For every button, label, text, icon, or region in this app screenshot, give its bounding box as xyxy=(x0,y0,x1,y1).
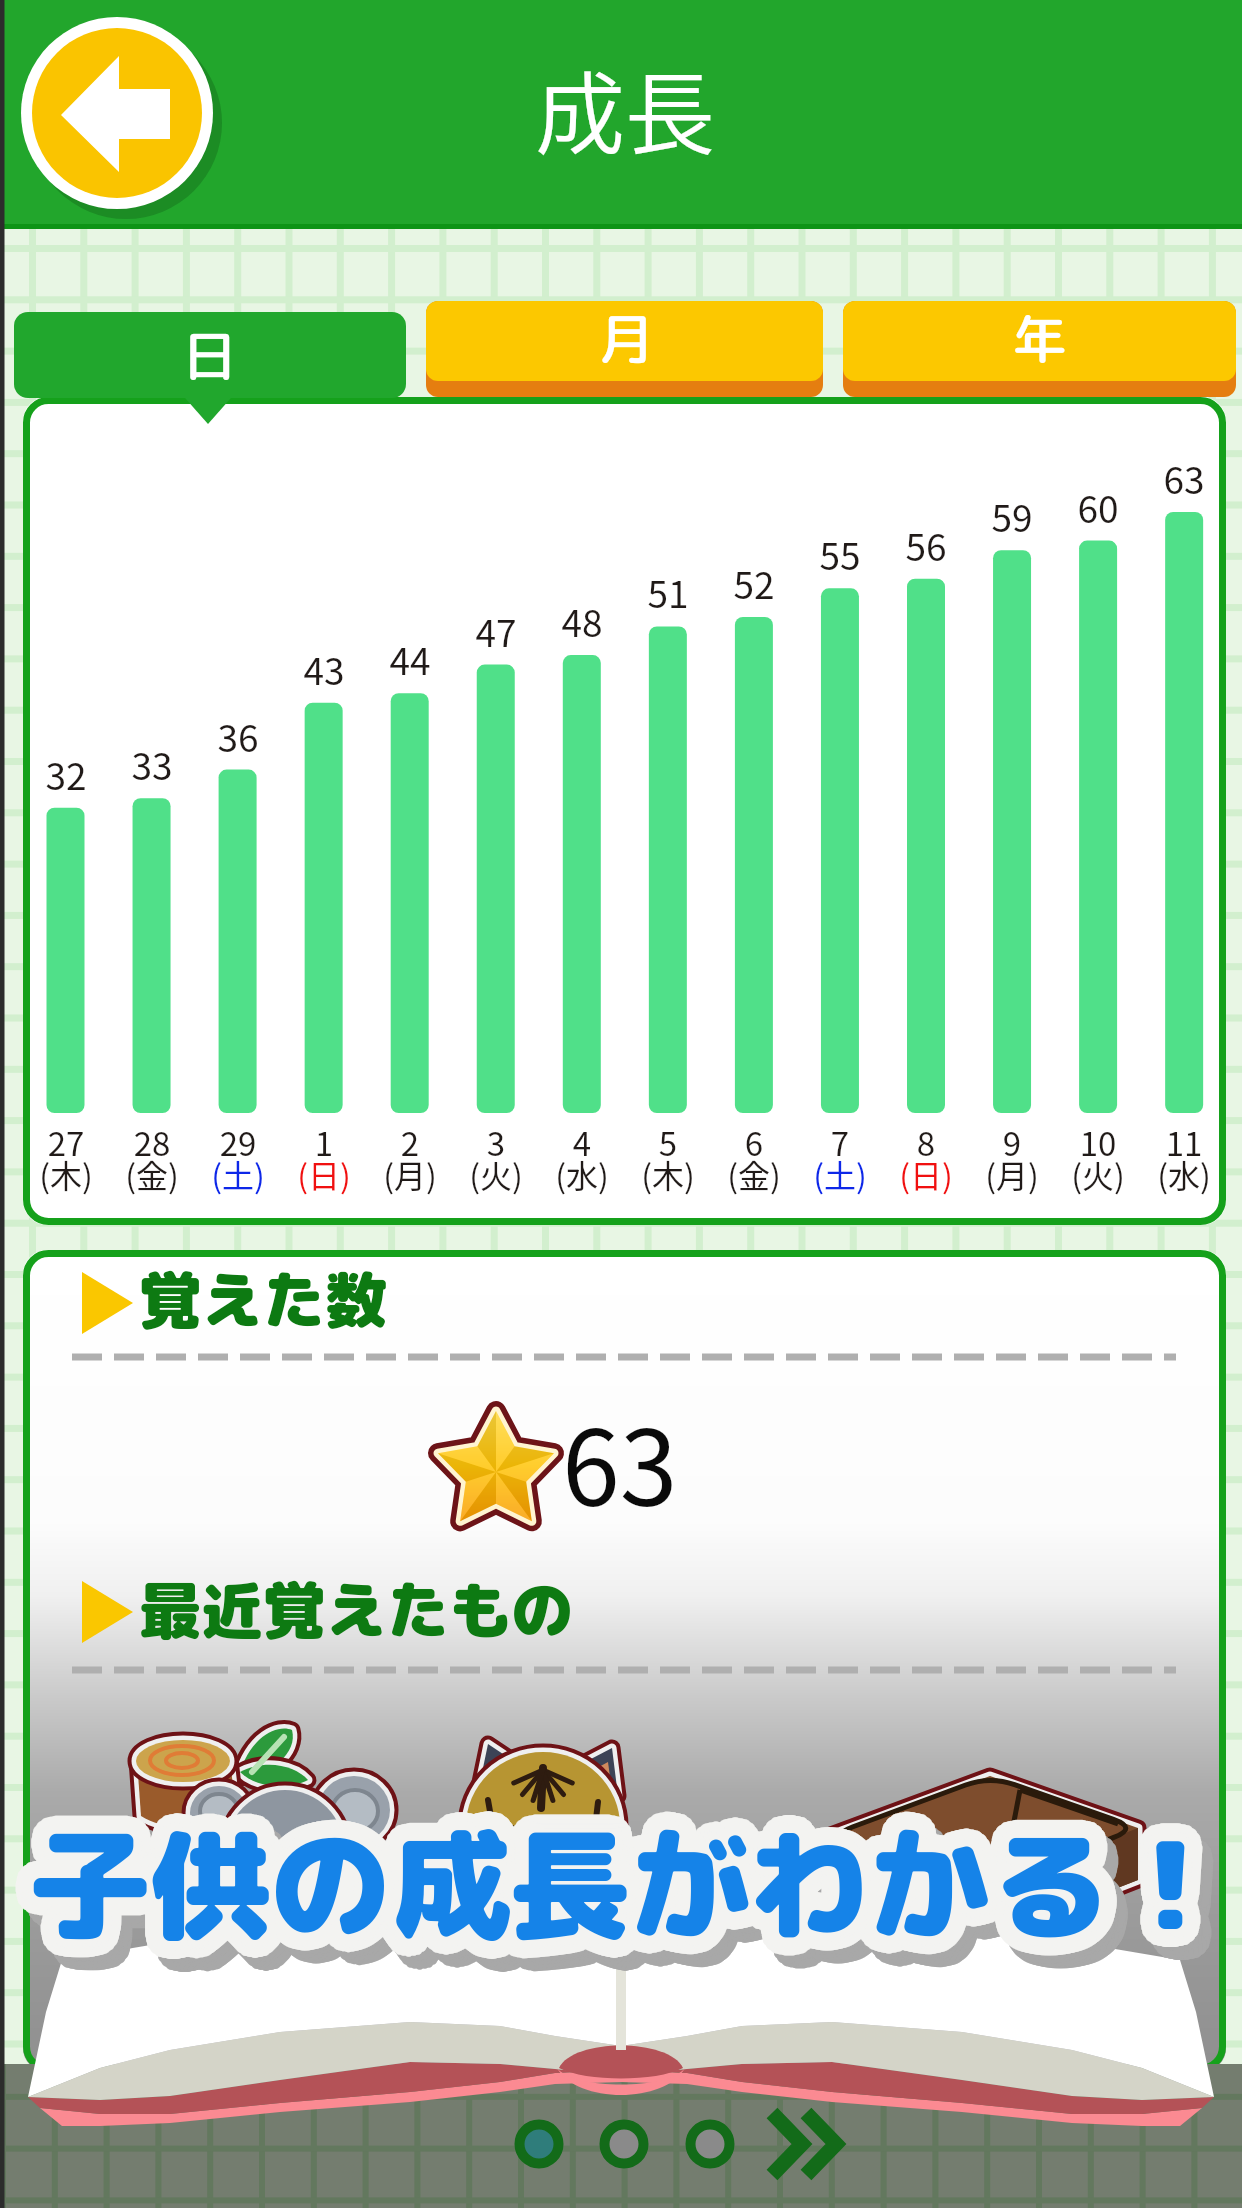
staticText: 子供の成長がわかる！ xyxy=(5,1795,1221,1975)
staticText: 子供の成長がわかる！ xyxy=(39,1805,1242,1985)
staticText: 子供の成長がわかる！ xyxy=(27,1817,1242,1997)
staticText: 子供の成長がわかる！ xyxy=(27,1808,1242,1988)
staticText: 子供の成長がわかる！ xyxy=(33,1795,1242,1975)
staticText: 子供の成長がわかる！ xyxy=(29,1805,1242,1985)
staticText: 子供の成長がわかる！ xyxy=(14,1796,1230,1976)
staticText: 33 xyxy=(0,737,602,796)
staticText: 子供の成長がわかる！ xyxy=(49,1822,1242,2002)
button[interactable] xyxy=(843,301,1236,397)
staticText: 子供の成長がわかる！ xyxy=(38,1805,1242,1985)
staticText: 29 xyxy=(0,1118,688,1171)
staticText: 子供の成長がわかる！ xyxy=(42,1797,1242,1977)
staticText: 月 xyxy=(176,301,1076,387)
staticText: 63 xyxy=(734,451,1242,510)
staticText: (火) xyxy=(46,1151,946,1202)
staticText: 6 xyxy=(304,1118,1204,1171)
staticText: (月) xyxy=(0,1151,860,1202)
staticText: 子供の成長がわかる！ xyxy=(28,1830,1242,2010)
staticText: 子供の成長がわかる！ xyxy=(31,1784,1242,1964)
staticText: 52 xyxy=(304,556,1204,615)
staticText: 子供の成長がわかる！ xyxy=(24,1813,1240,1993)
staticText: 2 xyxy=(0,1118,860,1171)
staticText: 子供の成長がわかる！ xyxy=(35,1813,1242,1993)
staticText: 子供の成長がわかる！ xyxy=(5,1805,1221,1985)
staticText: 子供の成長がわかる！ xyxy=(16,1818,1232,1998)
staticText: 43 xyxy=(0,642,774,701)
staticText: 子供の成長がわかる！ xyxy=(17,1783,1233,1963)
staticText: 子供の成長がわかる！ xyxy=(33,1804,1242,1984)
staticText: 子供の成長がわかる！ xyxy=(27,1783,1242,1963)
staticText: 36 xyxy=(0,709,688,768)
staticText: 55 xyxy=(390,527,1242,586)
staticText: 子供の成長がわかる！ xyxy=(29,1821,1242,2001)
button[interactable] xyxy=(426,301,823,397)
staticText: 10 xyxy=(648,1118,1242,1171)
staticText: 子供の成長がわかる！ xyxy=(38,1809,1242,1989)
staticText: 28 xyxy=(0,1118,602,1171)
staticText: 子供の成長がわかる！ xyxy=(31,1816,1242,1996)
staticText: 1 xyxy=(0,1118,774,1171)
staticText: (水) xyxy=(132,1151,1032,1202)
staticText: 5 xyxy=(218,1118,1118,1171)
staticText: 子供の成長がわかる！ xyxy=(33,1822,1242,2002)
staticText: 子供の成長がわかる！ xyxy=(35,1787,1242,1967)
staticText: 子供の成長がわかる！ xyxy=(24,1797,1240,1977)
staticText: 48 xyxy=(132,594,1032,653)
staticText: 3 xyxy=(46,1118,946,1171)
staticText: 子供の成長がわかる！ xyxy=(28,1796,1242,1976)
staticText: 子供の成長がわかる！ xyxy=(49,1804,1242,1984)
button[interactable]: Back xyxy=(20,14,220,214)
staticText: 子供の成長がわかる！ xyxy=(38,1796,1242,1976)
staticText: 子供の成長がわかる！ xyxy=(50,1808,1242,1988)
button[interactable] xyxy=(14,312,406,397)
staticText: (木) xyxy=(218,1151,1118,1202)
staticText: 子供の成長がわかる！ xyxy=(51,1813,1242,1993)
staticText: 子供の成長がわかる！ xyxy=(25,1809,1241,1989)
staticText: 子供の成長がわかる！ xyxy=(40,1800,1242,1980)
staticText: 63 xyxy=(562,1385,1242,1551)
staticText: 年 xyxy=(590,301,1242,387)
staticText: 子供の成長がわかる！ xyxy=(18,1808,1234,1988)
staticText: 子供の成長がわかる！ xyxy=(13,1784,1229,1964)
staticText: 子供の成長がわかる！ xyxy=(13,1800,1229,1980)
staticText: 子供の成長がわかる！ xyxy=(33,1813,1242,1993)
staticText: 子供の成長がわかる！ xyxy=(25,1818,1241,1998)
staticText: 子供の成長がわかる！ xyxy=(14,1805,1230,1985)
staticText: 子供の成長がわかる！ xyxy=(41,1809,1242,1989)
staticText: 子供の成長がわかる！ xyxy=(22,1809,1238,1989)
staticText: 子供の成長がわかる！ xyxy=(31,1800,1242,1980)
staticText: 子供の成長がわかる！ xyxy=(30,1796,1242,1976)
staticText: 子供の成長がわかる！ xyxy=(38,1791,1242,1971)
staticText: 子供の成長がわかる！ xyxy=(16,1808,1232,1988)
staticText: 子供の成長がわかる！ xyxy=(22,1800,1238,1980)
staticText: 60 xyxy=(648,480,1242,539)
staticText: 子供の成長がわかる！ xyxy=(38,1830,1242,2010)
staticText: 子供の成長がわかる！ xyxy=(15,1813,1231,1993)
staticText: (土) xyxy=(390,1151,1242,1202)
staticText: 子供の成長がわかる！ xyxy=(39,1795,1242,1975)
staticText: 子供の成長がわかる！ xyxy=(22,1782,1238,1962)
staticText: (金) xyxy=(0,1151,602,1202)
staticText: 27 xyxy=(0,1118,516,1171)
staticText: 子供の成長がわかる！ xyxy=(46,1826,1242,2006)
staticText: 子供の成長がわかる！ xyxy=(41,1818,1242,1998)
staticText: 子供の成長がわかる！ xyxy=(4,1800,1220,1980)
staticText: 44 xyxy=(0,632,860,691)
staticText: 子供の成長がわかる！ xyxy=(6,1791,1222,1971)
staticText: 7 xyxy=(390,1118,1242,1171)
staticText: 子供の成長がわかる！ xyxy=(22,1800,1238,1980)
staticText: 子供の成長がわかる！ xyxy=(27,1792,1242,1972)
staticText: (水) xyxy=(734,1151,1242,1202)
staticText: 子供の成長がわかる！ xyxy=(22,1791,1238,1971)
staticText: 子供の成長がわかる！ xyxy=(6,1809,1222,1989)
staticText: 成長 xyxy=(175,43,1075,187)
staticText: 子供の成長がわかる！ xyxy=(42,1829,1242,2009)
staticText: (日) xyxy=(0,1151,774,1202)
staticText: 56 xyxy=(476,518,1242,577)
staticText: 11 xyxy=(734,1118,1242,1171)
staticText: 47 xyxy=(46,604,946,663)
staticText: (金) xyxy=(304,1151,1204,1202)
staticText: 最近覚えたもの xyxy=(139,1566,1039,1665)
staticText: 日 xyxy=(0,318,660,404)
staticText: (土) xyxy=(0,1151,688,1202)
